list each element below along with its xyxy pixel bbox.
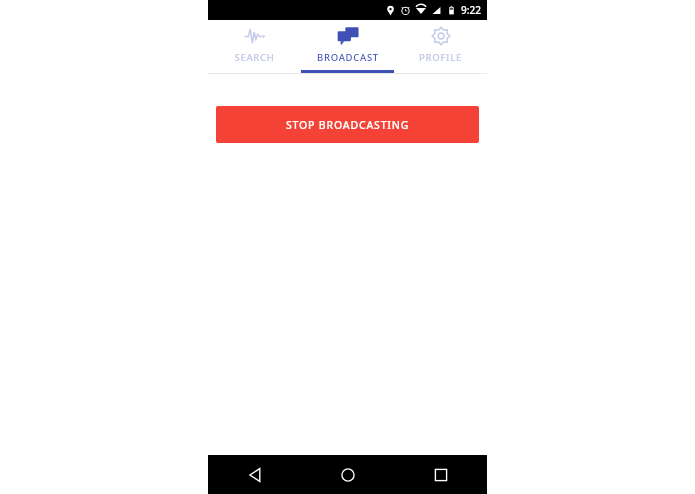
- staticText: SEARCH: [234, 51, 275, 64]
- button[interactable]: SEARCH: [208, 20, 301, 73]
- staticText: BROADCAST: [317, 51, 379, 64]
- staticText: STOP BROADCASTING: [286, 118, 410, 132]
- staticText: 9:22: [461, 3, 481, 17]
- button[interactable]: Back: [208, 455, 301, 494]
- button[interactable]: Recent apps: [394, 455, 487, 494]
- button[interactable]: Home: [301, 455, 394, 494]
- button[interactable]: PROFILE: [394, 20, 487, 73]
- button[interactable]: BROADCAST: [301, 20, 394, 73]
- button[interactable]: STOP BROADCASTING: [216, 106, 479, 143]
- staticText: PROFILE: [419, 51, 462, 64]
